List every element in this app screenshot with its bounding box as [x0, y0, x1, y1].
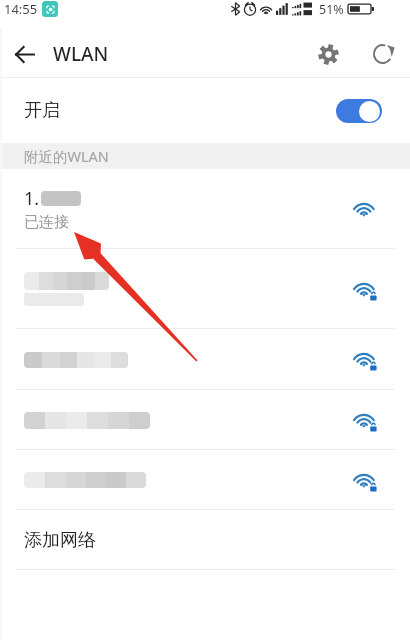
button[interactable]: 开启 [0, 78, 410, 143]
button[interactable] [0, 249, 410, 329]
button[interactable]: Back [0, 30, 48, 78]
button[interactable]: 添加网络 [0, 510, 410, 570]
button[interactable]: Refresh [360, 30, 408, 78]
staticText: 添加网络 [24, 529, 96, 552]
staticText: 14:55 [4, 0, 38, 18]
staticText: 已连接 [24, 213, 69, 232]
staticText: WLAN [53, 41, 109, 67]
button[interactable]: Settings [304, 30, 352, 78]
staticText: 开启 [24, 99, 60, 122]
staticText: 51% [319, 1, 344, 18]
staticText: 1. [24, 186, 40, 211]
staticText: 附近的WLAN [24, 146, 109, 166]
button[interactable] [0, 390, 410, 450]
button[interactable] [0, 450, 410, 510]
button[interactable] [0, 329, 410, 390]
button[interactable]: 1. [0, 169, 410, 249]
